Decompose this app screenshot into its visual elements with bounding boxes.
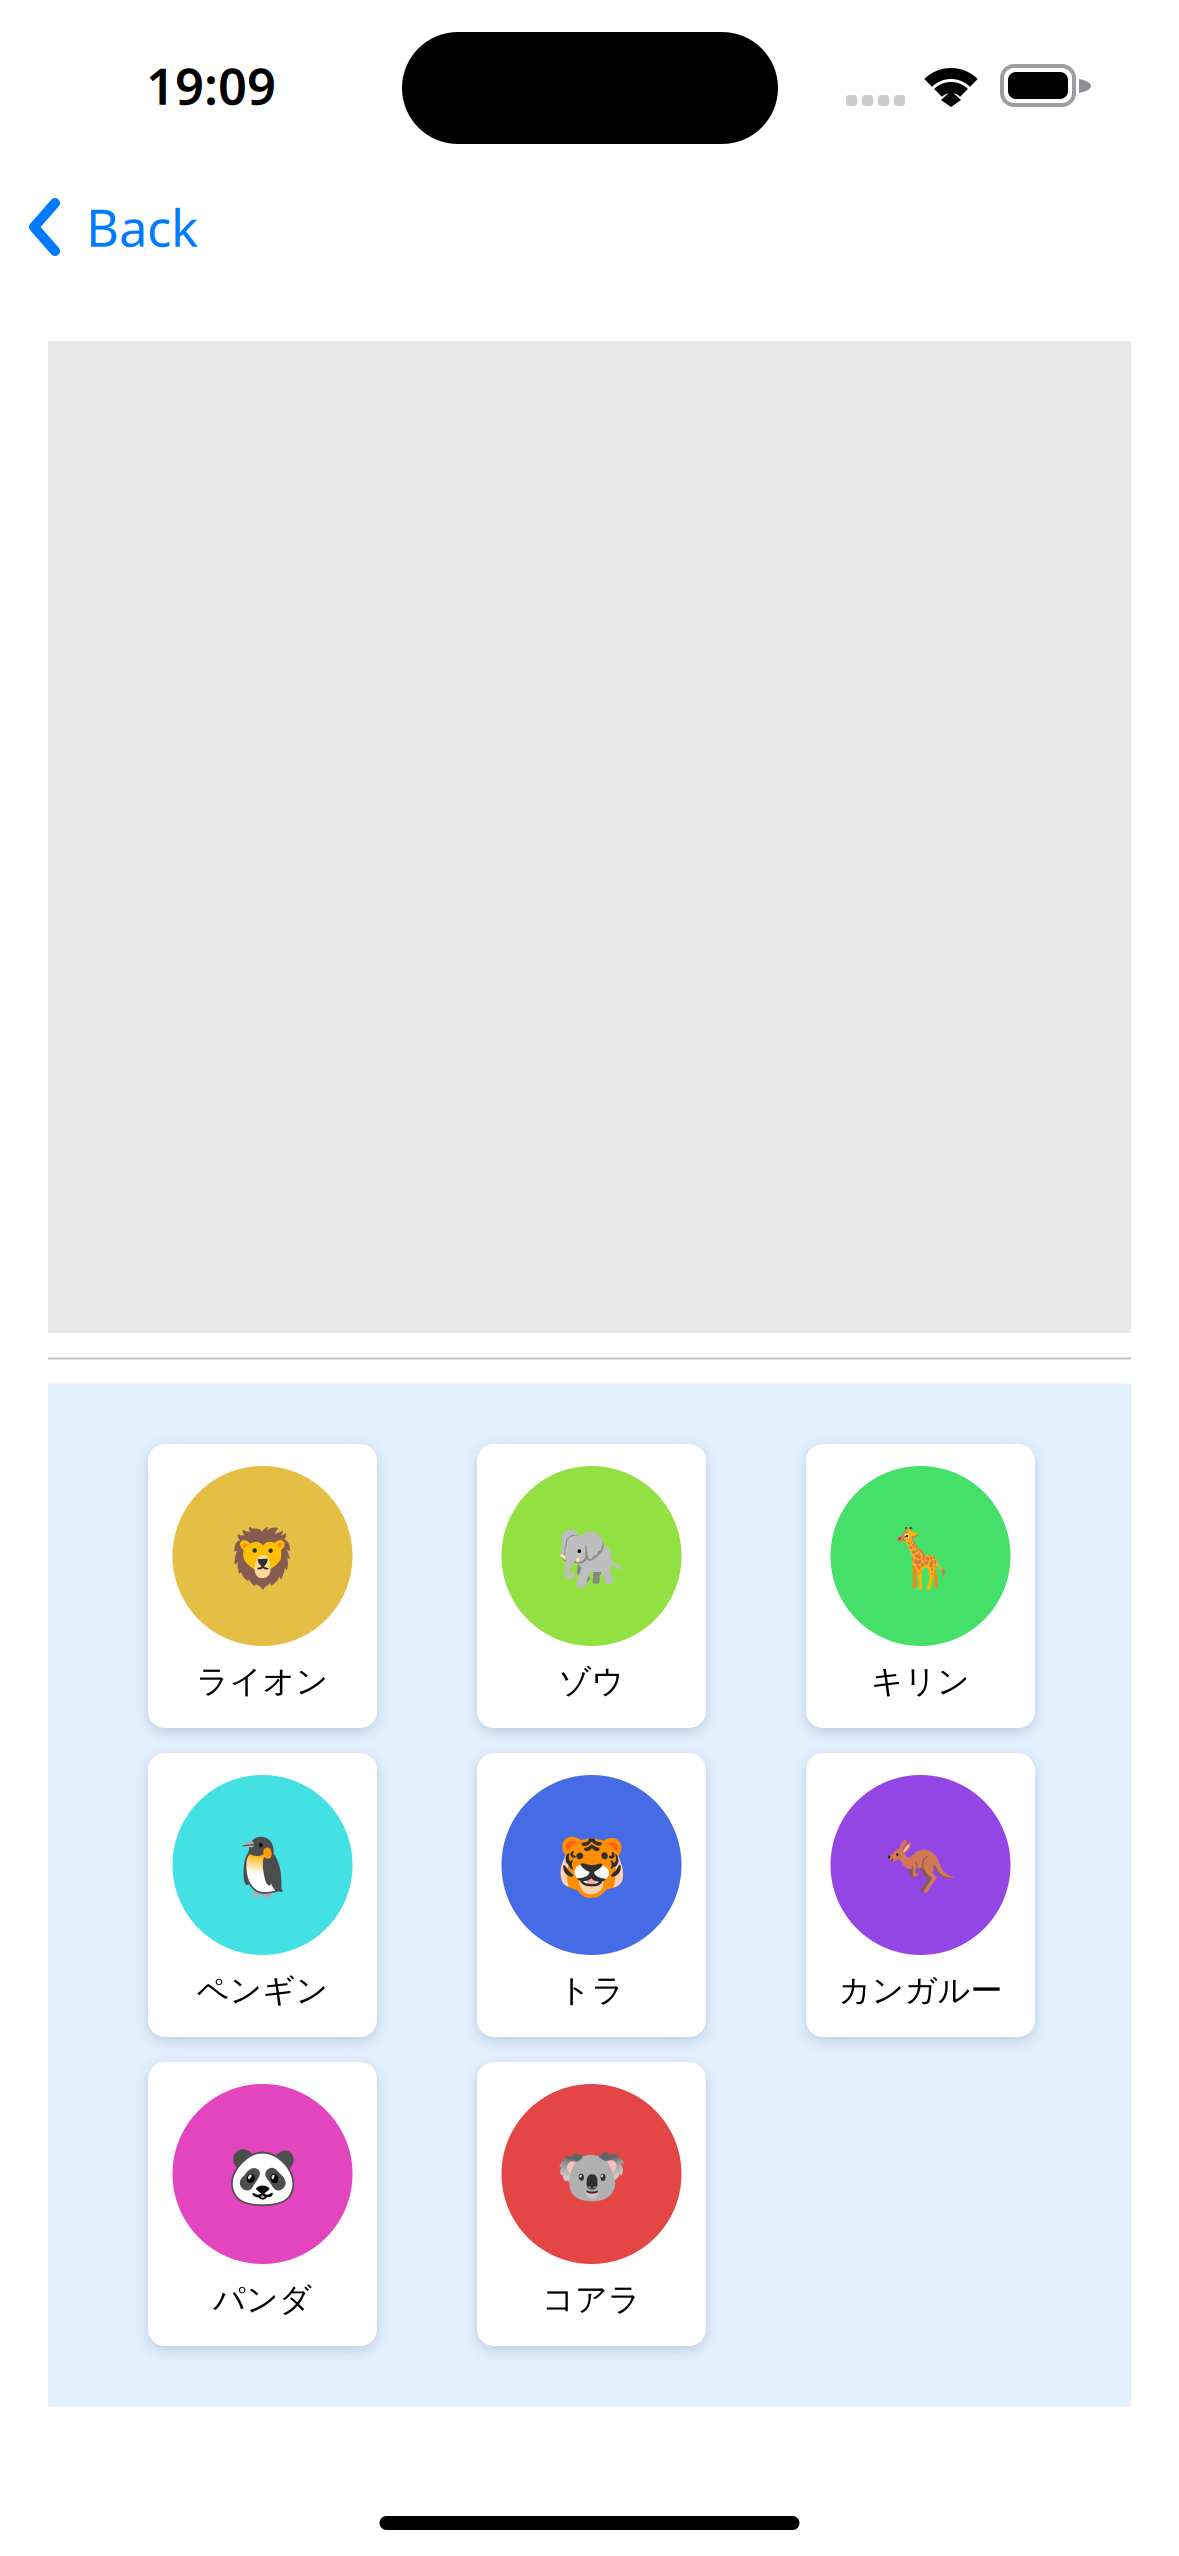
staticText: 19:09 — [146, 51, 276, 119]
staticText: ペンギン — [196, 1971, 328, 2010]
button[interactable]: 🦘 — [806, 1753, 1035, 2037]
staticText: カンガルー — [838, 1971, 1002, 2010]
button[interactable]: 🐼 — [148, 2062, 377, 2346]
staticText: コアラ — [542, 2280, 641, 2319]
staticText: トラ — [558, 1971, 624, 2010]
staticText: ゾウ — [558, 1662, 624, 1701]
staticText: 🐯 — [556, 1834, 627, 1900]
staticText: 🐼 — [227, 2143, 298, 2209]
button[interactable]: 🐘 — [477, 1444, 706, 1728]
button[interactable]: 🐯 — [477, 1753, 706, 2037]
staticText: キリン — [871, 1662, 970, 1701]
staticText: 🐨 — [556, 2143, 627, 2209]
button[interactable]: Back — [0, 160, 222, 300]
button[interactable]: 🦁 — [148, 1444, 377, 1728]
button[interactable]: 🐨 — [477, 2062, 706, 2346]
button[interactable]: 🐧 — [148, 1753, 377, 2037]
staticText: パンダ — [213, 2280, 312, 2319]
staticText: 🦘 — [885, 1834, 956, 1900]
staticText: ライオン — [196, 1662, 328, 1701]
button[interactable]: 🦒 — [806, 1444, 1035, 1728]
staticText: 🐘 — [556, 1525, 627, 1591]
staticText: 🦁 — [227, 1525, 298, 1591]
staticText: 🦒 — [885, 1525, 956, 1591]
staticText: 🐧 — [227, 1834, 298, 1900]
staticText: Back — [86, 193, 198, 261]
